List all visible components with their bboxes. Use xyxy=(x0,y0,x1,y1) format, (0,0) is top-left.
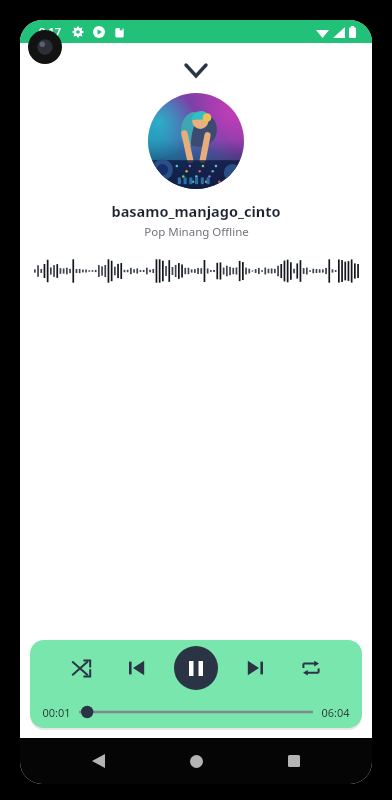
staticText: 00:01 xyxy=(42,705,71,720)
button[interactable]: Previous xyxy=(118,649,156,687)
button[interactable]: Shuffle xyxy=(62,649,100,687)
button[interactable]: Home xyxy=(176,741,216,781)
button[interactable] xyxy=(148,93,244,189)
staticText: Pop Minang Offline xyxy=(144,224,249,240)
button[interactable] xyxy=(79,701,313,723)
button[interactable]: Repeat xyxy=(292,649,330,687)
button[interactable]: Back xyxy=(78,741,118,781)
staticText: 9:17 xyxy=(39,24,61,39)
button[interactable]: Pause xyxy=(174,646,218,690)
button[interactable]: Recent apps xyxy=(274,741,314,781)
staticText: basamo_manjago_cinto xyxy=(111,201,281,221)
button[interactable]: Next xyxy=(236,649,274,687)
button[interactable]: Collapse player xyxy=(173,57,219,83)
staticText: 06:04 xyxy=(321,705,350,720)
